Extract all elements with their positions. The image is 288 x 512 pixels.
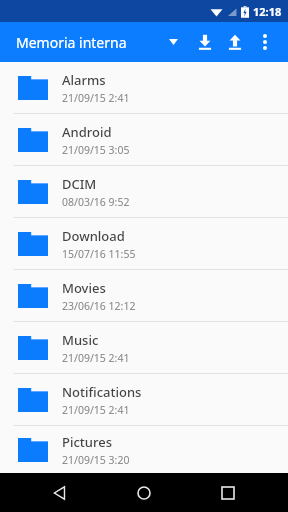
button[interactable]: More options: [250, 27, 280, 57]
button[interactable]: Music: [0, 322, 288, 373]
button[interactable]: Back: [36, 473, 84, 512]
button[interactable]: Pictures: [0, 426, 288, 473]
button[interactable]: Notifications: [0, 374, 288, 425]
staticText: 08/03/16 9:52: [62, 195, 130, 209]
staticText: Movies: [62, 279, 106, 297]
staticText: 21/09/15 2:41: [62, 351, 130, 365]
staticText: Download: [62, 227, 125, 245]
staticText: 12:18: [253, 4, 282, 19]
staticText: Alarms: [62, 71, 106, 89]
staticText: Android: [62, 123, 112, 141]
staticText: 21/09/15 2:41: [62, 403, 130, 417]
staticText: 15/07/16 11:55: [62, 247, 136, 261]
staticText: Memoria interna: [16, 33, 127, 52]
button[interactable]: Android: [0, 114, 288, 165]
button[interactable]: Download: [190, 27, 220, 57]
staticText: Music: [62, 331, 99, 349]
staticText: 21/09/15 3:05: [62, 143, 130, 157]
button[interactable]: DCIM: [0, 166, 288, 217]
staticText: 23/06/16 12:12: [62, 299, 136, 313]
staticText: 21/09/15 2:41: [62, 91, 130, 105]
staticText: Notifications: [62, 383, 142, 401]
staticText: 21/09/15 3:20: [62, 453, 130, 467]
button[interactable]: Movies: [0, 270, 288, 321]
staticText: Pictures: [62, 433, 112, 451]
button[interactable]: Home: [120, 473, 168, 512]
button[interactable]: Change storage: [160, 29, 186, 55]
button[interactable]: Upload: [220, 27, 250, 57]
staticText: DCIM: [62, 175, 97, 193]
button[interactable]: Alarms: [0, 62, 288, 113]
button[interactable]: Download: [0, 218, 288, 269]
button[interactable]: Recent apps: [204, 473, 252, 512]
